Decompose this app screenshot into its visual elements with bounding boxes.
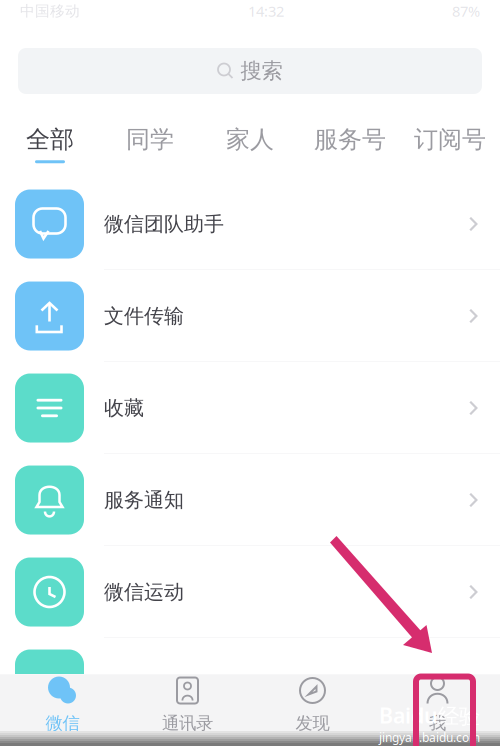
button[interactable]: 服务号 xyxy=(300,122,400,166)
staticText: 微信团队助手 xyxy=(104,212,224,236)
button[interactable]: 搜索 xyxy=(18,48,482,94)
button[interactable]: 微信团队助手 xyxy=(0,178,500,270)
button[interactable]: 家人 xyxy=(200,122,300,166)
button[interactable]: 收藏 xyxy=(0,362,500,454)
staticText: 搜索 xyxy=(240,58,282,84)
button[interactable]: 发现 xyxy=(250,670,375,738)
staticText: 服务号 xyxy=(314,125,386,154)
staticText: 服务通知 xyxy=(104,488,184,512)
staticText: 87% xyxy=(452,1,480,21)
button[interactable]: 全部 xyxy=(0,122,100,166)
staticText: 微信 xyxy=(45,712,79,734)
staticText: 发现 xyxy=(295,712,329,734)
staticText: jingyan.baidu.com xyxy=(379,729,480,745)
staticText: 购物中心 xyxy=(104,672,184,696)
button[interactable]: 订阅号 xyxy=(400,122,500,166)
button[interactable]: 购物中心 xyxy=(0,638,500,730)
button[interactable]: 通讯录 xyxy=(125,670,250,738)
staticText: 微信运动 xyxy=(104,580,184,604)
button[interactable]: 微信运动 xyxy=(0,546,500,638)
button[interactable]: 微信 xyxy=(0,670,125,738)
staticText: 收藏 xyxy=(104,396,144,420)
staticText: 文件传输 xyxy=(104,304,184,328)
staticText: 同学 xyxy=(126,125,174,154)
button[interactable]: 文件传输 xyxy=(0,270,500,362)
staticText: 中国移动 xyxy=(20,2,80,20)
staticText: 14:32 xyxy=(248,1,284,21)
button[interactable]: 服务通知 xyxy=(0,454,500,546)
staticText: 全部 xyxy=(26,125,74,154)
button[interactable]: 同学 xyxy=(100,122,200,166)
staticText: 通讯录 xyxy=(162,712,213,734)
staticText: 我 xyxy=(429,712,446,734)
staticText: 家人 xyxy=(226,125,274,154)
button[interactable]: 我 xyxy=(375,670,500,738)
staticText: 订阅号 xyxy=(414,125,486,154)
staticText: Baidu经验 xyxy=(379,701,480,729)
